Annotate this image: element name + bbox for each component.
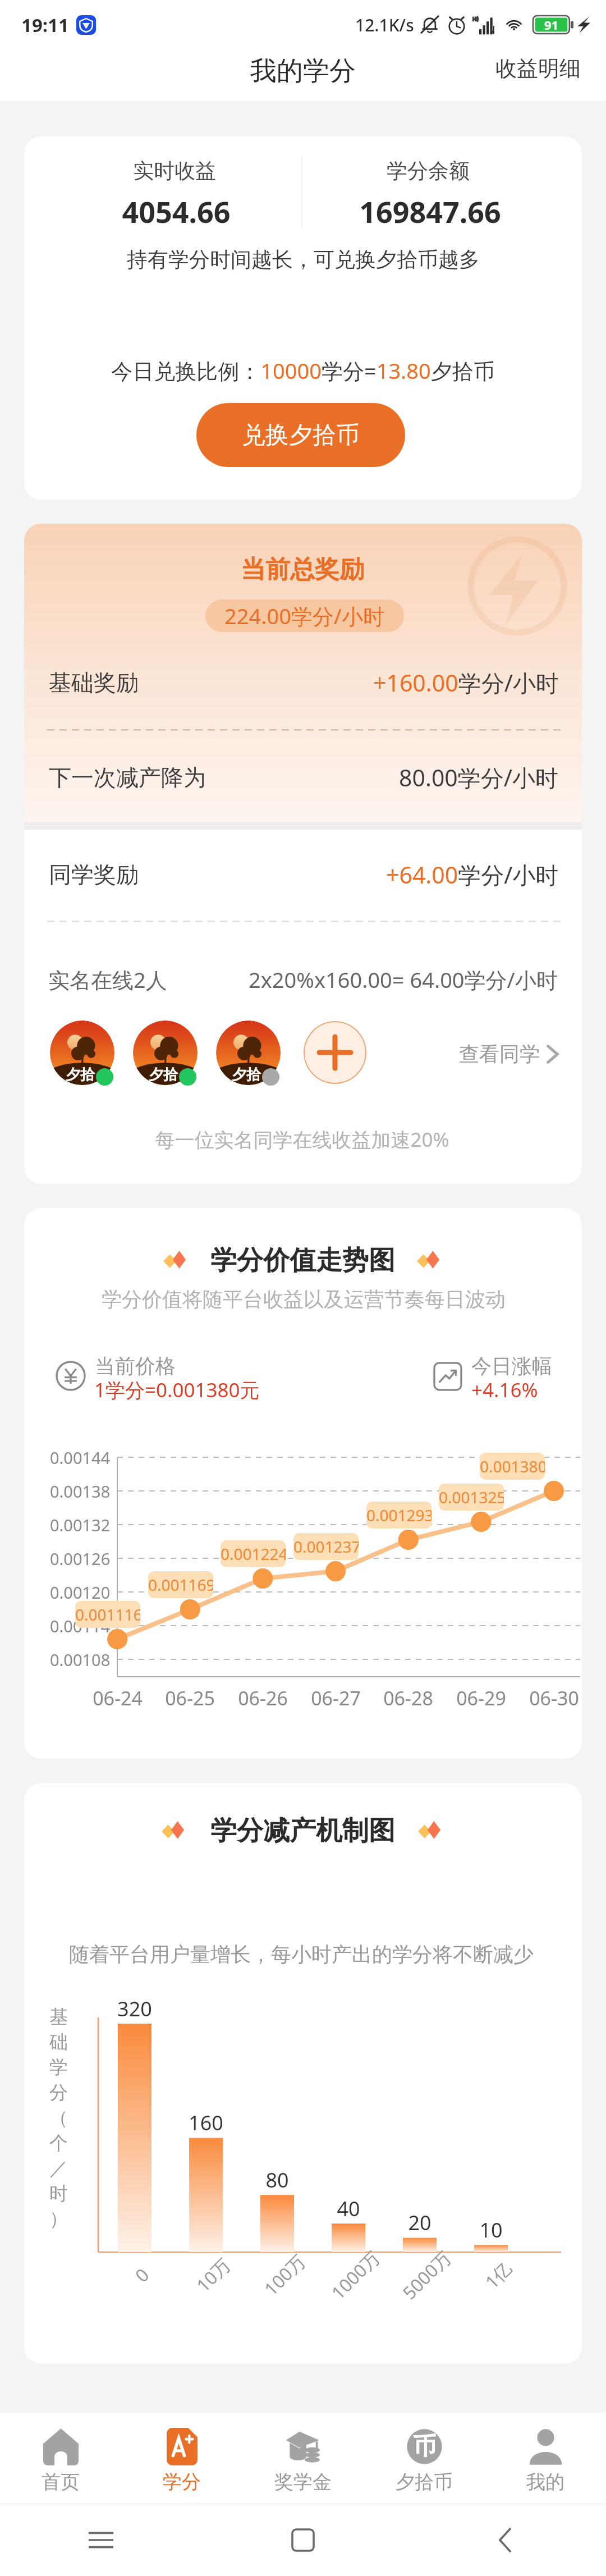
staticText: 当前价格: [95, 1353, 176, 1379]
staticText: 奖学金: [274, 2470, 332, 2494]
staticText: 实时收益: [133, 158, 216, 184]
staticText: +64.00学分/小时: [386, 859, 559, 890]
staticText: 12.1K/s: [355, 13, 414, 36]
staticText: 20: [408, 2209, 431, 2236]
staticText: 学分价值将随平台收益以及运营节奏每日波动: [102, 1287, 506, 1312]
staticText: 下一次减产降为: [49, 763, 206, 791]
button[interactable]: 收益明细: [479, 44, 606, 93]
button[interactable]: 兑换夕拾币: [196, 403, 405, 467]
staticText: 320: [117, 1995, 152, 2023]
staticText: 0.001293: [366, 1504, 431, 1526]
staticText: 0.001325: [439, 1486, 504, 1508]
staticText: 06-29: [456, 1685, 506, 1711]
staticText: 0.00108: [50, 1649, 111, 1671]
staticText: 同学奖励: [49, 861, 139, 889]
staticText: 1学分=0.001380元: [94, 1376, 260, 1403]
staticText: +4.16%: [471, 1376, 538, 1403]
staticText: 学分价值走势图: [210, 1244, 395, 1277]
staticText: 学分: [163, 2470, 201, 2494]
staticText: 夕拾币: [396, 2470, 453, 2494]
staticText: 80.00学分/小时: [399, 762, 559, 793]
staticText: 分: [49, 2081, 68, 2104]
staticText: 今日涨幅: [471, 1353, 552, 1379]
staticText: 0.00114: [50, 1615, 111, 1637]
staticText: 每一位实名同学在线收益加速20%: [155, 1126, 449, 1153]
staticText: 夕拾: [149, 1065, 178, 1084]
staticText: 学: [49, 2056, 68, 2079]
staticText: 0.001237: [293, 1536, 359, 1557]
staticText: 当前总奖励: [241, 554, 364, 585]
staticText: ）: [49, 2207, 68, 2231]
staticText: 学分减产机制图: [210, 1814, 395, 1847]
button[interactable]: 查看同学: [449, 1031, 564, 1076]
staticText: 06-26: [238, 1685, 288, 1711]
staticText: 224.00学分/小时: [224, 601, 385, 630]
staticText: 首页: [42, 2470, 80, 2494]
staticText: 学分余额: [387, 158, 470, 184]
staticText: 查看同学: [459, 1041, 540, 1067]
staticText: 169847.66: [359, 191, 501, 231]
staticText: 持有学分时间越长，可兑换夕拾币越多: [127, 246, 480, 273]
staticText: 1亿: [480, 2256, 517, 2294]
staticText: 础: [49, 2030, 68, 2054]
staticText: 2x20%x160.00= 64.00学分/小时: [249, 965, 558, 994]
staticText: 收益明细: [495, 55, 581, 82]
staticText: 基: [49, 2005, 68, 2029]
button[interactable]: 添加同学: [304, 1021, 366, 1084]
staticText: 0.00132: [50, 1514, 111, 1536]
staticText: 我的学分: [250, 54, 356, 88]
staticText: 今日兑换比例：10000学分=13.80夕拾币: [111, 356, 495, 385]
staticText: 0.00138: [50, 1480, 111, 1502]
staticText: 0.00126: [50, 1548, 111, 1570]
staticText: （: [49, 2106, 68, 2130]
staticText: 5000万: [397, 2245, 457, 2305]
button[interactable]: 学分: [121, 2413, 242, 2504]
staticText: 160: [189, 2109, 223, 2136]
staticText: ／: [49, 2157, 68, 2180]
staticText: 0.001169: [148, 1574, 213, 1595]
staticText: 40: [337, 2195, 360, 2222]
staticText: 4054.66: [122, 191, 231, 231]
staticText: 0.00144: [50, 1447, 111, 1468]
staticText: 100万: [259, 2249, 311, 2301]
staticText: 实名在线2人: [48, 965, 167, 994]
staticText: 10万: [191, 2253, 236, 2297]
staticText: 个: [49, 2131, 68, 2155]
staticText: 基础奖励: [49, 669, 139, 697]
staticText: 币: [413, 2432, 437, 2461]
button[interactable]: 我的: [485, 2413, 606, 2504]
staticText: 0: [130, 2262, 155, 2287]
staticText: 06-28: [383, 1685, 433, 1711]
staticText: 06-27: [311, 1685, 361, 1711]
staticText: 06-24: [93, 1685, 143, 1711]
staticText: 兑换夕拾币: [242, 420, 360, 450]
staticText: 91: [544, 16, 559, 33]
staticText: 06-25: [165, 1685, 215, 1711]
staticText: 夕拾: [66, 1065, 95, 1084]
staticText: 0.001224: [221, 1543, 286, 1564]
staticText: 1000万: [326, 2245, 385, 2305]
staticText: 80: [265, 2166, 289, 2194]
staticText: 19:11: [21, 12, 69, 38]
staticText: 0.001380: [480, 1456, 545, 1477]
staticText: 0.001116: [75, 1604, 140, 1625]
staticText: 夕拾: [232, 1065, 261, 1084]
staticText: 随着平台用户量增长，每小时产出的学分将不断减少: [69, 1942, 534, 1967]
button[interactable]: 奖学金: [242, 2413, 364, 2504]
button[interactable]: 币: [364, 2413, 485, 2504]
staticText: 我的: [526, 2470, 564, 2494]
staticText: 10: [479, 2216, 503, 2244]
staticText: +160.00学分/小时: [373, 667, 559, 698]
staticText: 06-30: [529, 1685, 579, 1711]
button[interactable]: 首页: [0, 2413, 121, 2504]
staticText: 时: [49, 2182, 68, 2206]
staticText: 0.00120: [50, 1581, 111, 1603]
